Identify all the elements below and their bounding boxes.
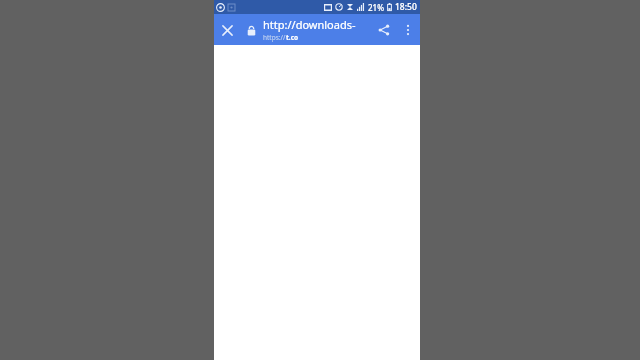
staticText: 18:50	[395, 1, 417, 13]
button[interactable]: Share	[372, 18, 396, 42]
button[interactable]: http://downloads-minec…	[263, 17, 368, 42]
staticText: 21%	[368, 2, 384, 13]
button[interactable]: Close	[214, 17, 240, 43]
staticText: t.co	[286, 33, 299, 42]
staticText: http://downloads-minec…	[263, 17, 368, 32]
button[interactable]: More options	[396, 18, 420, 42]
staticText: https://	[263, 33, 286, 42]
